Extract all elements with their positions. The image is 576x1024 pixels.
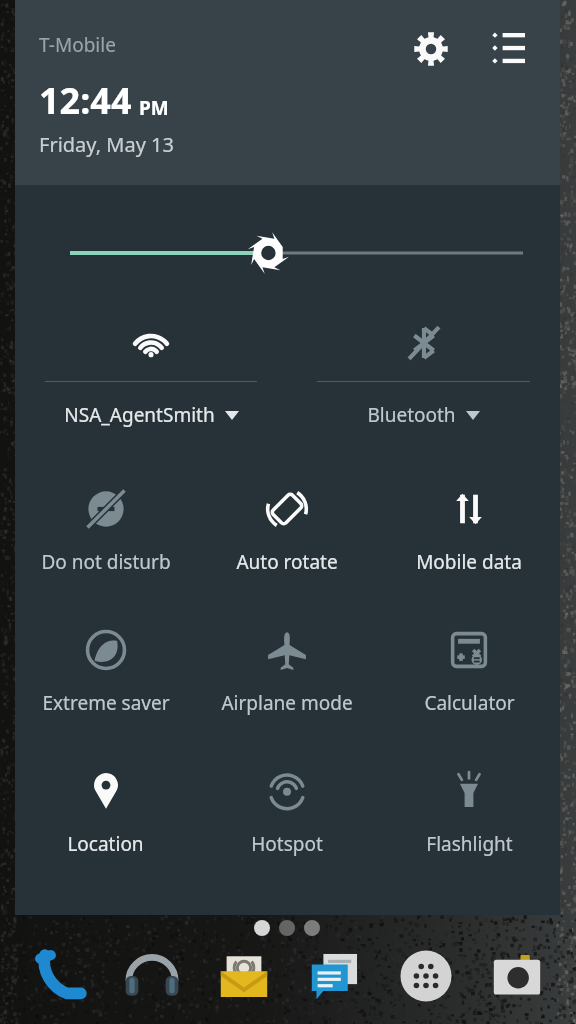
staticText: Friday, May 13 xyxy=(39,131,174,158)
button[interactable]: Notifications list xyxy=(484,24,534,74)
button[interactable]: All apps xyxy=(380,928,471,1024)
button[interactable]: Headphones xyxy=(106,928,198,1024)
staticText: 12:44 xyxy=(39,76,132,125)
staticText: Mobile data xyxy=(416,549,522,575)
button[interactable]: Bluetooth xyxy=(287,319,560,428)
button[interactable]: Flashlight xyxy=(378,758,560,899)
staticText: Calculator xyxy=(424,690,515,716)
button[interactable]: Phone xyxy=(14,928,106,1024)
staticText: Flashlight xyxy=(426,831,513,857)
staticText: PM xyxy=(139,95,169,121)
staticText: NSA_AgentSmith xyxy=(64,402,215,428)
staticText: T-Mobile xyxy=(39,32,116,58)
button[interactable]: Mobile data xyxy=(378,476,560,617)
button[interactable]: Messages xyxy=(289,928,380,1024)
button[interactable]: Airplane mode xyxy=(196,617,378,758)
button[interactable]: Camera xyxy=(471,928,562,1024)
button[interactable]: Email xyxy=(198,928,289,1024)
button[interactable]: Do not disturb xyxy=(15,476,196,617)
staticText: Auto rotate xyxy=(236,549,338,575)
button[interactable]: Settings xyxy=(406,24,456,74)
button[interactable]: Location xyxy=(15,758,196,899)
button[interactable]: NSA_AgentSmith xyxy=(15,319,287,428)
staticText: Bluetooth xyxy=(367,402,456,428)
button[interactable]: Calculator xyxy=(378,617,560,758)
staticText: Extreme saver xyxy=(42,690,170,716)
staticText: Airplane mode xyxy=(221,690,353,716)
staticText: Do not disturb xyxy=(41,549,171,575)
button[interactable]: Auto rotate xyxy=(196,476,378,617)
button[interactable]: Hotspot xyxy=(196,758,378,899)
staticText: Hotspot xyxy=(251,831,323,857)
button[interactable]: Brightness xyxy=(15,225,560,281)
staticText: Location xyxy=(67,831,144,857)
button[interactable]: Extreme saver xyxy=(15,617,196,758)
